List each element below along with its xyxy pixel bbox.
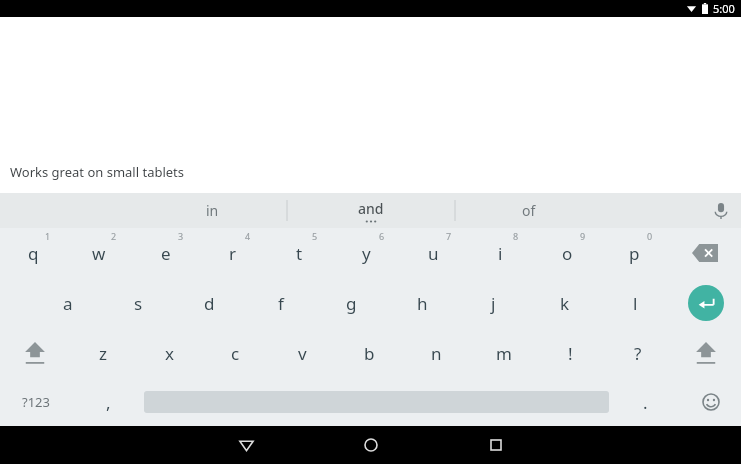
button[interactable]: g	[316, 278, 387, 328]
staticText: in	[206, 201, 219, 220]
staticText: k	[560, 292, 570, 315]
staticText: t	[296, 242, 303, 265]
staticText: d	[204, 292, 215, 315]
button[interactable]: Back	[210, 426, 282, 464]
button[interactable]: q	[0, 228, 66, 278]
staticText: v	[298, 342, 307, 365]
button[interactable]: m	[470, 328, 537, 378]
button[interactable]: !	[537, 328, 604, 378]
staticText: 8	[513, 230, 519, 242]
staticText: j	[491, 292, 496, 315]
button[interactable]: Backspace	[668, 228, 741, 278]
staticText: x	[165, 342, 174, 365]
button[interactable]: w	[66, 228, 132, 278]
staticText: r	[229, 242, 237, 265]
staticText: ?	[634, 342, 642, 365]
staticText: l	[633, 292, 638, 315]
button[interactable]: in	[140, 193, 284, 228]
button[interactable]: Home	[335, 426, 407, 464]
staticText: !	[568, 342, 573, 365]
button[interactable]: p	[601, 228, 668, 278]
staticText: u	[428, 242, 439, 265]
staticText: g	[346, 292, 357, 315]
button[interactable]: ,	[72, 378, 144, 426]
button[interactable]: n	[403, 328, 470, 378]
staticText: o	[562, 242, 573, 265]
button[interactable]: Emoji	[681, 378, 741, 426]
staticText: c	[231, 342, 240, 365]
button[interactable]: e	[132, 228, 199, 278]
button[interactable]: s	[103, 278, 174, 328]
staticText: of	[522, 201, 536, 220]
staticText: ,	[106, 391, 111, 414]
staticText: 9	[580, 230, 586, 242]
staticText: 3	[178, 230, 184, 242]
staticText: z	[99, 342, 107, 365]
staticText: q	[28, 242, 39, 265]
button[interactable]: z	[70, 328, 136, 378]
staticText: b	[364, 342, 375, 365]
staticText: p	[629, 242, 640, 265]
staticText: h	[417, 292, 428, 315]
staticText: 4	[245, 230, 251, 242]
button[interactable]: and	[287, 193, 455, 228]
staticText: m	[496, 342, 512, 365]
button[interactable]: h	[387, 278, 458, 328]
staticText: n	[431, 342, 442, 365]
button[interactable]: ?123	[0, 378, 72, 426]
button[interactable]: Voice input	[701, 193, 741, 228]
button[interactable]: Enter	[671, 278, 741, 328]
button[interactable]: a	[33, 278, 103, 328]
button[interactable]: Shift	[0, 328, 70, 378]
staticText: w	[92, 242, 106, 265]
button[interactable]: b	[336, 328, 403, 378]
staticText: 1	[45, 230, 51, 242]
button[interactable]: j	[458, 278, 529, 328]
staticText: e	[161, 242, 171, 265]
staticText: ?123	[22, 393, 50, 411]
staticText: 0	[647, 230, 653, 242]
button[interactable]: x	[136, 328, 202, 378]
button[interactable]: k	[529, 278, 600, 328]
button[interactable]: Recent apps	[460, 426, 532, 464]
staticText: 6	[379, 230, 385, 242]
button[interactable]: .	[609, 378, 681, 426]
staticText: 7	[446, 230, 452, 242]
staticText: i	[498, 242, 503, 265]
button[interactable]: of	[455, 193, 603, 228]
staticText: 5	[312, 230, 318, 242]
button[interactable]: d	[174, 278, 245, 328]
button[interactable]: o	[534, 228, 601, 278]
button[interactable]: l	[600, 278, 671, 328]
staticText: a	[63, 292, 73, 315]
button[interactable]: v	[269, 328, 336, 378]
staticText: f	[278, 292, 284, 315]
button[interactable]: ?	[604, 328, 671, 378]
button[interactable]: u	[400, 228, 467, 278]
staticText: s	[134, 292, 143, 315]
button[interactable]: i	[467, 228, 534, 278]
button[interactable]: y	[333, 228, 400, 278]
button[interactable]: Shift	[671, 328, 741, 378]
button[interactable]: f	[245, 278, 316, 328]
button[interactable]: r	[199, 228, 266, 278]
staticText: and	[358, 199, 384, 218]
button[interactable]: c	[202, 328, 269, 378]
button[interactable]: t	[266, 228, 333, 278]
staticText: 5:00	[713, 1, 735, 16]
staticText: .	[643, 391, 648, 414]
staticText: 2	[111, 230, 117, 242]
staticText: y	[362, 242, 371, 265]
staticText: Works great on small tablets	[10, 163, 185, 181]
